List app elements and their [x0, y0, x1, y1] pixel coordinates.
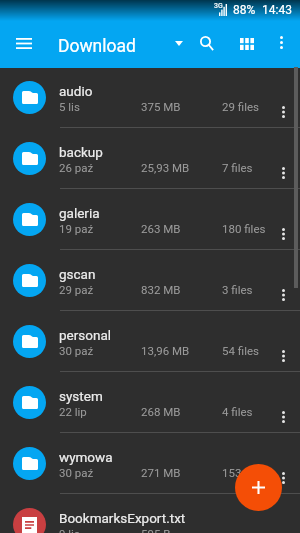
button[interactable]: Grid view	[230, 27, 263, 60]
button[interactable]: Item options	[271, 67, 296, 128]
button[interactable]: Item options	[271, 372, 296, 433]
staticText: 832 MB	[141, 283, 181, 296]
staticText: 88%	[233, 3, 256, 17]
button[interactable]: Item options	[271, 128, 296, 189]
staticText: 14:43	[262, 3, 292, 17]
staticText: 595 B	[141, 527, 171, 533]
button[interactable]: More options	[266, 27, 297, 58]
staticText: 180 files	[222, 222, 266, 235]
staticText: 30 paź	[59, 466, 94, 479]
button[interactable]: Sort order	[165, 30, 192, 57]
staticText: 5 lis	[59, 100, 80, 113]
staticText: 7 files	[222, 161, 253, 174]
button[interactable]: Item options	[271, 433, 296, 494]
staticText: 153 files	[222, 466, 266, 479]
staticText: 30 paź	[59, 344, 94, 357]
staticText: 3G	[214, 2, 223, 10]
staticText: audio	[59, 83, 93, 99]
staticText: backup	[59, 144, 103, 160]
button[interactable]: personal	[0, 311, 300, 372]
button[interactable]: Item options	[271, 494, 296, 533]
button[interactable]: Add	[235, 464, 282, 511]
staticText: galeria	[59, 205, 100, 221]
staticText: 268 MB	[141, 405, 181, 418]
staticText: 29 files	[222, 100, 259, 113]
staticText: 26 paź	[59, 161, 94, 174]
button[interactable]: BookmarksExport.txt	[0, 494, 300, 533]
button[interactable]: Item options	[271, 311, 296, 372]
button[interactable]: Item options	[271, 250, 296, 311]
staticText: 13,96 MB	[141, 344, 190, 357]
staticText: 263 MB	[141, 222, 181, 235]
staticText: 25,93 MB	[141, 161, 190, 174]
staticText: 4 files	[222, 405, 253, 418]
button[interactable]: Download	[58, 36, 136, 57]
staticText: BookmarksExport.txt	[59, 510, 186, 526]
staticText: system	[59, 388, 103, 404]
staticText: 22 lip	[59, 405, 87, 418]
button[interactable]: gscan	[0, 250, 300, 311]
staticText: personal	[59, 327, 112, 343]
button[interactable]: galeria	[0, 189, 300, 250]
staticText: 375 MB	[141, 100, 181, 113]
staticText: 9 lis	[59, 527, 80, 533]
button[interactable]: backup	[0, 128, 300, 189]
staticText: 19 paź	[59, 222, 94, 235]
staticText: gscan	[59, 266, 96, 282]
staticText: 54 files	[222, 344, 259, 357]
button[interactable]: Item options	[271, 189, 296, 250]
staticText: 3 files	[222, 283, 253, 296]
staticText: wymowa	[59, 449, 113, 465]
staticText: 29 paź	[59, 283, 94, 296]
staticText: 271 MB	[141, 466, 181, 479]
button[interactable]: Open navigation drawer	[7, 27, 40, 60]
button[interactable]: system	[0, 372, 300, 433]
button[interactable]: Search	[190, 27, 223, 60]
button[interactable]: wymowa	[0, 433, 300, 494]
button[interactable]: audio	[0, 67, 300, 128]
